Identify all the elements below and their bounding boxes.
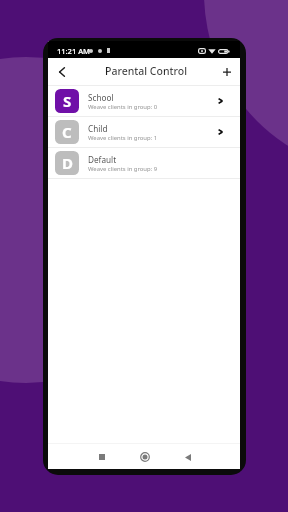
button[interactable]: Back (166, 447, 209, 467)
staticText: 11:21 AM (57, 46, 90, 56)
button[interactable]: Recent apps (80, 447, 123, 467)
staticText: Weave clients in group: 1 (88, 134, 158, 142)
staticText: School (88, 92, 114, 103)
button[interactable]: Add group (216, 61, 238, 83)
staticText: C (62, 122, 72, 142)
staticText: Weave clients in group: 9 (88, 165, 158, 173)
staticText: Weave clients in group: 0 (88, 103, 158, 111)
button[interactable]: Home (123, 447, 166, 467)
staticText: Child (88, 123, 108, 134)
button[interactable]: S (48, 85, 240, 116)
staticText: D (62, 153, 73, 173)
staticText: S (63, 91, 72, 111)
staticText: Parental Control (105, 64, 188, 78)
button[interactable]: Back (51, 61, 73, 83)
staticText: Default (88, 154, 117, 165)
button[interactable]: D (48, 147, 240, 178)
button[interactable]: C (48, 116, 240, 147)
